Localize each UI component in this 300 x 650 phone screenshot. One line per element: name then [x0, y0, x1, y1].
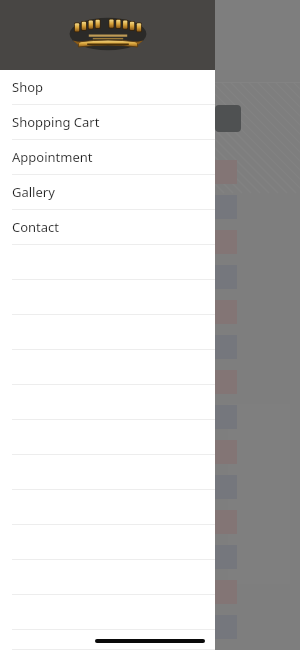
staticText: Shop — [12, 78, 44, 96]
button[interactable]: Shopping Cart — [0, 105, 215, 140]
button[interactable]: Shop — [0, 70, 215, 105]
staticText: Gallery — [12, 183, 55, 201]
button[interactable]: Gallery — [0, 175, 215, 210]
button[interactable]: Appointment — [0, 140, 215, 175]
staticText: Appointment — [12, 148, 93, 166]
staticText: Contact — [12, 218, 60, 236]
button[interactable]: Duke Johns logo — [0, 0, 215, 70]
staticText: Shopping Cart — [12, 113, 100, 131]
button[interactable]: Contact — [0, 210, 215, 245]
